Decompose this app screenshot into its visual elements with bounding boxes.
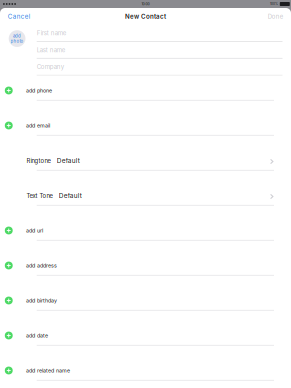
staticText: add email [26,122,50,129]
staticText: add date [26,332,48,339]
button[interactable]: Add photo [9,30,25,47]
button[interactable]: add url [0,206,291,241]
button[interactable]: add email [0,101,291,136]
button[interactable]: Text Tone [0,171,291,206]
button[interactable]: Done [260,8,291,25]
staticText: Ringtone [26,157,50,164]
button[interactable]: add date [0,311,291,346]
staticText: 100% [270,2,278,6]
staticText: add phone [26,87,52,94]
staticText: Default [57,156,80,164]
staticText: add address [26,262,57,269]
staticText: photo [11,39,24,44]
staticText: Done [268,13,283,20]
staticText: Company [37,63,64,70]
staticText: Default [59,191,82,199]
staticText: Last name [37,46,66,54]
staticText: add url [26,227,43,234]
button[interactable]: add birthday [0,276,291,311]
staticText: add birthday [26,297,57,304]
staticText: First name [37,29,67,37]
staticText: 10:00 [141,2,149,6]
button[interactable]: add address [0,241,291,276]
button[interactable]: Cancel [0,8,39,25]
staticText: New Contact [125,13,166,20]
button[interactable]: Ringtone [0,136,291,171]
button[interactable]: add related name [0,346,291,381]
staticText: add [13,33,21,39]
button[interactable]: add phone [0,76,291,101]
staticText: Text Tone [26,192,52,199]
staticText: add related name [26,367,70,374]
staticText: Cancel [8,13,31,20]
